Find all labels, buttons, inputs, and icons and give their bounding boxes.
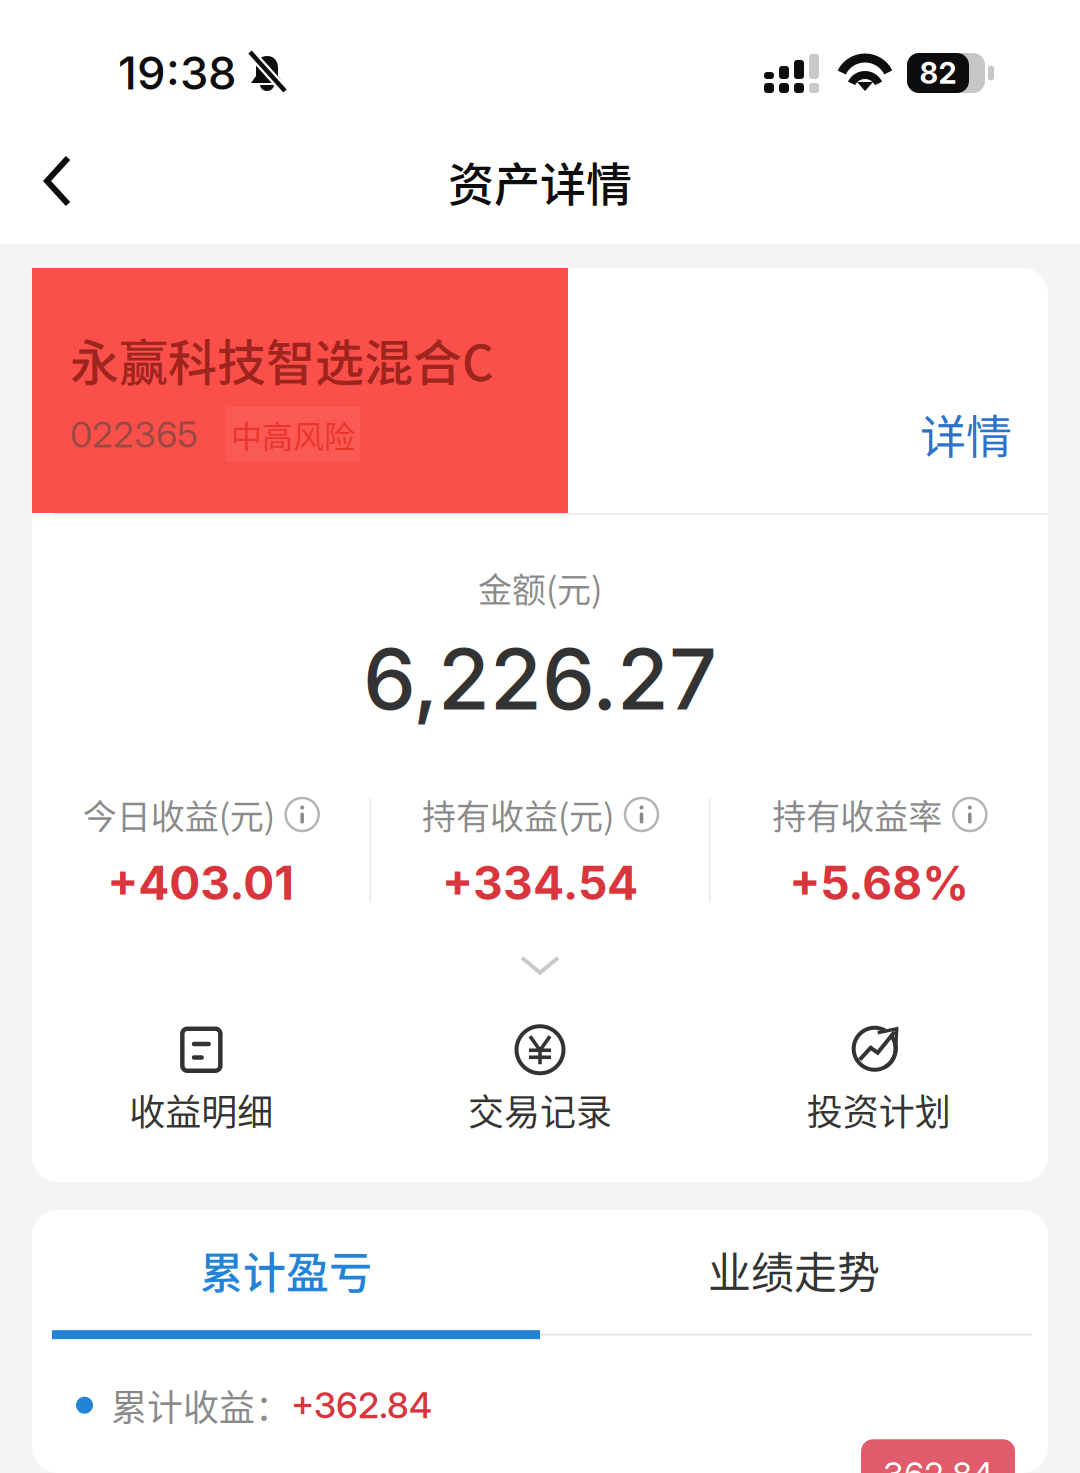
staticText: +334.54 <box>442 855 638 911</box>
staticText: 收益明细 <box>129 1084 273 1136</box>
button[interactable]: 详情 <box>904 386 1028 481</box>
staticText: 永赢科技智选混合C <box>70 324 494 395</box>
staticText: 362.84 <box>883 1453 993 1473</box>
button[interactable]: 累计盈亏 <box>32 1217 540 1323</box>
staticText: 19:38 <box>118 46 237 100</box>
button[interactable]: 收益明细 <box>32 1022 371 1136</box>
button[interactable]: 返回 <box>0 124 108 238</box>
button[interactable]: 业绩走势 <box>540 1217 1048 1323</box>
staticText: 今日收益(元) <box>83 790 275 839</box>
staticText: 交易记录 <box>468 1084 612 1136</box>
staticText: 详情 <box>920 400 1012 467</box>
staticText: +5.68% <box>789 855 969 911</box>
staticText: 业绩走势 <box>708 1239 880 1301</box>
staticText: 累计盈亏 <box>200 1239 372 1301</box>
staticText: 022365 <box>70 413 198 456</box>
button[interactable]: 投资计划 <box>709 1022 1048 1136</box>
staticText: 累计收益： <box>111 1379 291 1431</box>
staticText: +362.84 <box>291 1383 432 1427</box>
button[interactable]: 展开 <box>480 947 600 984</box>
staticText: 6,226.27 <box>363 628 717 730</box>
staticText: 投资计划 <box>807 1084 951 1136</box>
staticText: 资产详情 <box>448 148 632 214</box>
button[interactable]: 今日收益(元) <box>32 790 369 911</box>
button[interactable]: 交易记录 <box>371 1022 709 1136</box>
button[interactable]: 持有收益率 <box>711 790 1048 911</box>
staticText: 82 <box>919 55 956 91</box>
staticText: 金额(元) <box>478 563 602 612</box>
staticText: 持有收益(元) <box>422 790 614 839</box>
button[interactable]: 持有收益(元) <box>371 790 709 911</box>
staticText: 持有收益率 <box>772 790 942 839</box>
staticText: 中高风险 <box>231 412 355 457</box>
staticText: +403.01 <box>107 855 294 911</box>
